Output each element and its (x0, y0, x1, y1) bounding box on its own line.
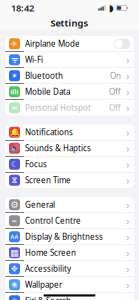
button[interactable]: Airplane Mode (114, 39, 130, 48)
staticText: Off (109, 86, 121, 97)
staticText: Control Centre (25, 215, 81, 226)
button[interactable]: 🔔 (5, 124, 134, 140)
staticText: ᯤ (11, 54, 18, 65)
staticText: ıllı (10, 87, 18, 96)
button[interactable]: ❀ (5, 277, 134, 292)
staticText: › (126, 101, 130, 115)
staticText: Settings (50, 17, 88, 29)
staticText: Home Screen (25, 247, 76, 258)
button[interactable]: ıllı (5, 84, 134, 99)
staticText: Notifications (25, 127, 73, 137)
staticText: › (126, 173, 130, 187)
staticText: › (126, 141, 130, 155)
button[interactable]: ⧖ (5, 172, 134, 188)
staticText: Screen Time (25, 175, 71, 185)
staticText: › (126, 214, 130, 228)
staticText: › (126, 157, 130, 171)
button[interactable]: ∞ (5, 100, 134, 115)
staticText: Airplane Mode (25, 38, 80, 49)
staticText: ◗ (109, 3, 114, 13)
staticText: ◉ (11, 296, 18, 300)
button[interactable]: ▦ (5, 245, 134, 260)
staticText: › (126, 278, 130, 292)
staticText: ▦ (10, 247, 19, 258)
staticText: › (126, 125, 130, 139)
button[interactable]: ⚙ (5, 197, 134, 212)
staticText: › (126, 198, 130, 212)
staticText: Personal Hotspot (25, 102, 91, 113)
staticText: ⚙ (10, 199, 18, 210)
staticText: ✈ (11, 39, 18, 48)
staticText: General (25, 199, 55, 210)
staticText: Focus (25, 159, 47, 169)
staticText: › (126, 246, 130, 260)
staticText: › (126, 230, 130, 244)
staticText: On (110, 70, 121, 81)
button[interactable]: ☾ (5, 156, 134, 172)
staticText: Display & Brightness (25, 231, 103, 242)
staticText: Mobile Data (25, 86, 70, 97)
button[interactable]: AA (5, 229, 134, 244)
staticText: AA (10, 233, 18, 240)
button[interactable]: ᯤ (5, 52, 134, 67)
staticText: Off (109, 102, 121, 113)
staticText: ✥ (11, 264, 18, 273)
staticText: ∞ (11, 103, 18, 112)
staticText: ❀ (11, 280, 18, 289)
button[interactable]: ✶ (5, 68, 134, 83)
button[interactable]: ⌁ (5, 213, 134, 228)
staticText: › (126, 53, 130, 67)
staticText: Siri & Search (25, 295, 71, 300)
button[interactable]: ◉ (5, 293, 134, 300)
staticText: 🔔 (9, 128, 19, 137)
staticText: 🔊 (9, 144, 19, 153)
staticText: Accessibility (25, 263, 71, 274)
staticText: ⌁ (11, 215, 17, 226)
staticText: ☾ (11, 160, 18, 169)
staticText: Wi-Fi (25, 54, 43, 65)
staticText: Sounds & Haptics (25, 143, 91, 153)
staticText: ✶ (11, 71, 18, 80)
staticText: ⧖ (11, 176, 17, 184)
button[interactable]: ✥ (5, 261, 134, 276)
button[interactable]: 🔊 (5, 140, 134, 156)
staticText: › (126, 262, 130, 276)
staticText: Wallpaper (25, 279, 62, 290)
staticText: › (126, 69, 130, 83)
staticText: › (126, 85, 130, 99)
staticText: 18:42 (11, 2, 34, 14)
staticText: Bluetooth (25, 70, 63, 81)
